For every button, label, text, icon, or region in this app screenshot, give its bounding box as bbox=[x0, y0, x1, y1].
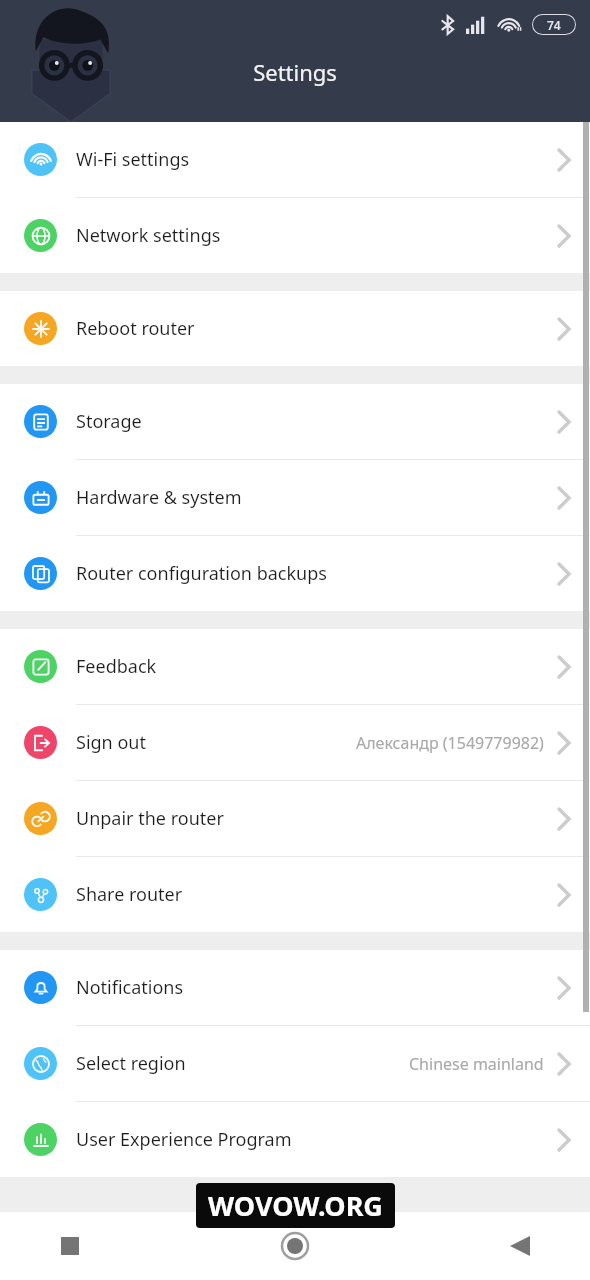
button[interactable]: Feedback bbox=[0, 629, 590, 704]
staticText: Storage bbox=[76, 409, 142, 434]
staticText: Hardware & system bbox=[76, 485, 242, 510]
staticText: 74 bbox=[547, 17, 561, 33]
staticText: Share router bbox=[76, 882, 183, 907]
staticText: WOVOW.ORG bbox=[208, 1187, 383, 1224]
button[interactable]: Router configuration backups bbox=[0, 536, 590, 611]
button[interactable]: Hardware & system bbox=[0, 460, 590, 535]
staticText: Feedback bbox=[76, 654, 157, 679]
staticText: Settings bbox=[253, 57, 337, 87]
staticText: Notifications bbox=[76, 975, 184, 1000]
button[interactable]: Storage bbox=[0, 384, 590, 459]
staticText: Chinese mainland bbox=[409, 1053, 544, 1075]
staticText: Reboot router bbox=[76, 316, 195, 341]
staticText: Router configuration backups bbox=[76, 561, 327, 586]
button[interactable]: User Experience Program bbox=[0, 1102, 590, 1177]
staticText: Александр (1549779982) bbox=[356, 732, 544, 754]
button[interactable]: Sign out bbox=[0, 705, 590, 780]
button[interactable]: Select region bbox=[0, 1026, 590, 1101]
staticText: Wi-Fi settings bbox=[76, 147, 190, 172]
button[interactable]: Reboot router bbox=[0, 291, 590, 366]
button[interactable]: Recent apps bbox=[40, 1216, 100, 1276]
button[interactable]: Wi-Fi settings bbox=[0, 122, 590, 197]
staticText: User Experience Program bbox=[76, 1127, 292, 1152]
staticText: Sign out bbox=[76, 730, 146, 755]
button[interactable]: Network settings bbox=[0, 198, 590, 273]
button[interactable]: Share router bbox=[0, 857, 590, 932]
button[interactable]: Unpair the router bbox=[0, 781, 590, 856]
staticText: Network settings bbox=[76, 223, 221, 248]
button[interactable]: Notifications bbox=[0, 950, 590, 1025]
button[interactable]: Back bbox=[490, 1216, 550, 1276]
button[interactable]: Home bbox=[265, 1216, 325, 1276]
staticText: Select region bbox=[76, 1051, 186, 1076]
staticText: Unpair the router bbox=[76, 806, 224, 831]
